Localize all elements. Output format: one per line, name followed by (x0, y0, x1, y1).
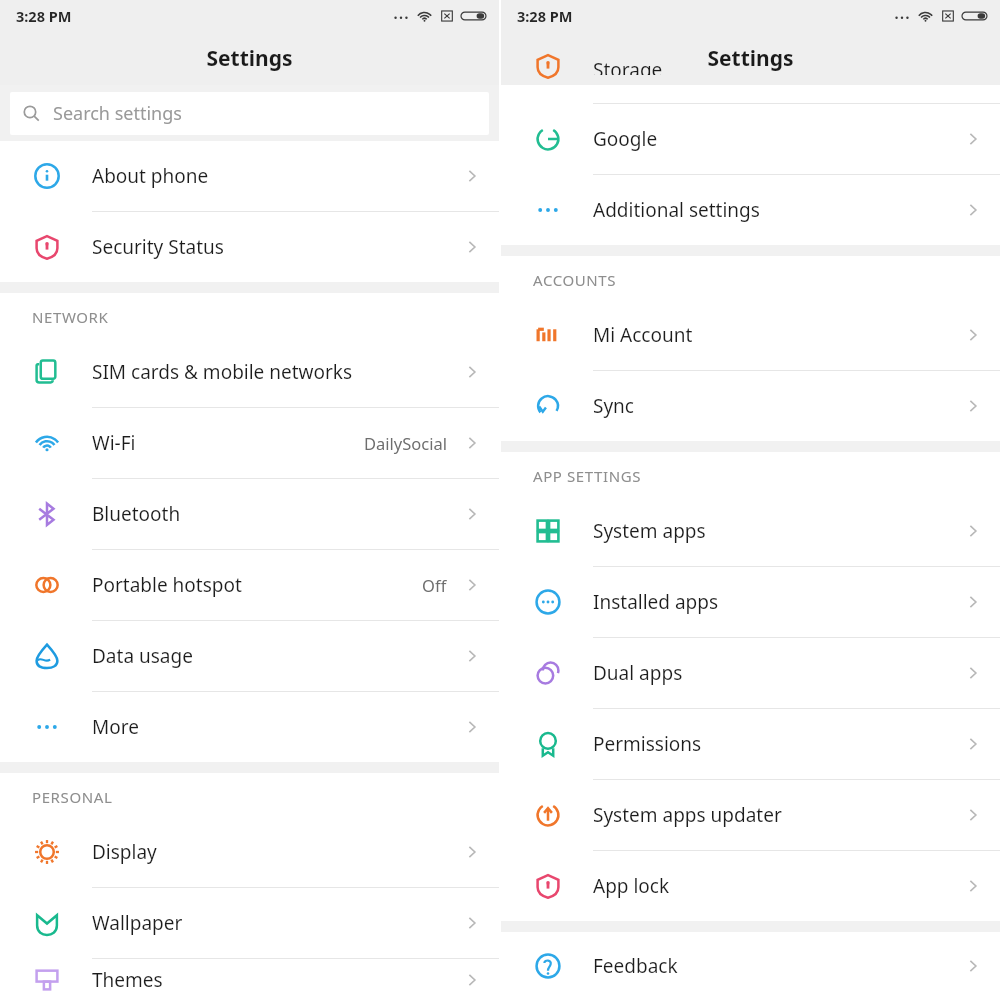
staticText: Mi Account (593, 322, 693, 348)
button[interactable]: Additional settings (501, 175, 1000, 245)
staticText: Display (92, 839, 157, 865)
button[interactable]: Feedback (501, 932, 1000, 1000)
button[interactable]: Bluetooth (0, 479, 499, 549)
button[interactable]: Security Status (0, 212, 499, 282)
staticText: 3:28 PM (517, 6, 573, 26)
button[interactable]: Data usage (0, 621, 499, 691)
staticText: Permissions (593, 731, 702, 757)
staticText: Themes (92, 967, 163, 993)
button[interactable]: Dual apps (501, 638, 1000, 708)
staticText: Settings (206, 44, 293, 73)
staticText: Storage (593, 57, 663, 75)
button[interactable]: Sync (501, 371, 1000, 441)
button[interactable]: Google (501, 104, 1000, 174)
button[interactable]: Wi-Fi (0, 408, 499, 478)
button[interactable]: Wallpaper (0, 888, 499, 958)
staticText: Google (593, 126, 658, 152)
button[interactable]: More (0, 692, 499, 762)
staticText: SIM cards & mobile networks (92, 359, 353, 385)
staticText: DailySocial (364, 432, 447, 454)
button[interactable]: App lock (501, 851, 1000, 921)
staticText: APP SETTINGS (533, 466, 642, 486)
button[interactable]: Themes (0, 959, 499, 1000)
button[interactable]: Search settings (10, 92, 489, 135)
staticText: System apps (593, 518, 706, 544)
staticText: ACCOUNTS (533, 270, 617, 290)
staticText: App lock (593, 873, 670, 899)
button[interactable]: Display (0, 817, 499, 887)
staticText: More (92, 714, 139, 740)
staticText: Installed apps (593, 589, 719, 615)
staticText: Sync (593, 393, 634, 419)
staticText: Feedback (593, 953, 678, 979)
staticText: Bluetooth (92, 501, 181, 527)
staticText: Dual apps (593, 660, 683, 686)
button[interactable]: System apps updater (501, 780, 1000, 850)
button[interactable]: Mi Account (501, 300, 1000, 370)
staticText: Additional settings (593, 197, 760, 223)
staticText: Security Status (92, 234, 224, 260)
staticText: Portable hotspot (92, 572, 242, 598)
staticText: System apps updater (593, 802, 782, 828)
staticText: Wallpaper (92, 910, 183, 936)
button[interactable]: System apps (501, 496, 1000, 566)
button[interactable]: About phone (0, 141, 499, 211)
staticText: Settings (707, 44, 794, 73)
button[interactable]: Portable hotspot (0, 550, 499, 620)
staticText: Search settings (53, 101, 182, 126)
button[interactable]: SIM cards & mobile networks (0, 337, 499, 407)
staticText: PERSONAL (32, 787, 113, 807)
staticText: 3:28 PM (16, 6, 72, 26)
staticText: NETWORK (32, 307, 109, 327)
staticText: Wi-Fi (92, 430, 136, 456)
staticText: Data usage (92, 643, 193, 669)
button[interactable]: Installed apps (501, 567, 1000, 637)
staticText: Off (422, 574, 447, 596)
button[interactable]: Permissions (501, 709, 1000, 779)
staticText: About phone (92, 163, 209, 189)
